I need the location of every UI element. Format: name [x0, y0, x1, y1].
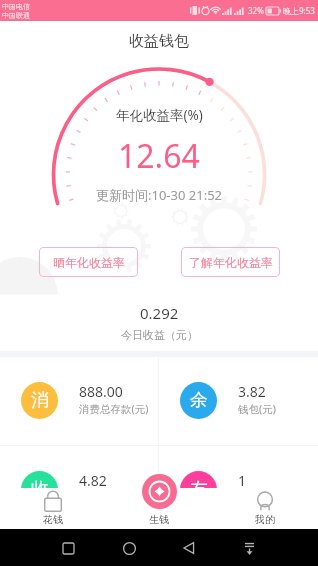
button[interactable]: 消 — [0, 357, 158, 445]
staticText: 余 — [190, 389, 208, 412]
staticText: 12.64 — [118, 134, 200, 178]
staticText: 中国电信 — [2, 2, 30, 11]
button[interactable]: 余 — [159, 357, 318, 445]
button[interactable]: 花钱 — [0, 488, 106, 529]
staticText: 中国联通 — [2, 11, 30, 20]
staticText: 晒年化收益率 — [53, 255, 125, 270]
button[interactable]: 生钱 — [106, 488, 212, 529]
button[interactable]: Recents — [54, 534, 82, 562]
staticText: 更新时间:10-30 21:52 — [96, 186, 223, 204]
staticText: 我的 — [255, 513, 275, 526]
button[interactable]: Home — [115, 534, 143, 562]
staticText: 3.82 — [238, 382, 266, 401]
staticText: 年化收益率(%) — [116, 106, 203, 124]
button[interactable]: Hide keyboard — [235, 534, 263, 562]
staticText: 友 — [190, 478, 208, 501]
staticText: 收 — [31, 478, 49, 501]
button[interactable]: 友 — [159, 446, 318, 534]
staticText: 4.82 — [79, 471, 107, 490]
staticText: 1 — [238, 471, 247, 490]
staticText: 消 — [31, 389, 49, 412]
button[interactable]: 晒年化收益率 — [39, 247, 138, 277]
staticText: 花钱 — [43, 513, 63, 526]
button[interactable]: 我的 — [212, 488, 318, 529]
staticText: 生钱 — [149, 513, 169, 526]
staticText: 钱包(元) — [238, 402, 276, 416]
staticText: 今日收益（元） — [121, 328, 198, 342]
button[interactable]: Back — [175, 534, 203, 562]
staticText: 了解年化收益率 — [189, 255, 273, 270]
button[interactable]: 了解年化收益率 — [181, 247, 280, 277]
staticText: 0.292 — [140, 303, 179, 323]
staticText: 晚上9:53 — [283, 5, 315, 16]
staticText: 32% — [248, 5, 264, 16]
staticText: 888.00 — [79, 382, 123, 401]
staticText: 消费总存款(元) — [79, 402, 149, 416]
staticText: 收益钱包 — [129, 32, 189, 51]
button[interactable]: 收 — [0, 446, 158, 534]
staticText: 好友(人) — [238, 491, 276, 505]
